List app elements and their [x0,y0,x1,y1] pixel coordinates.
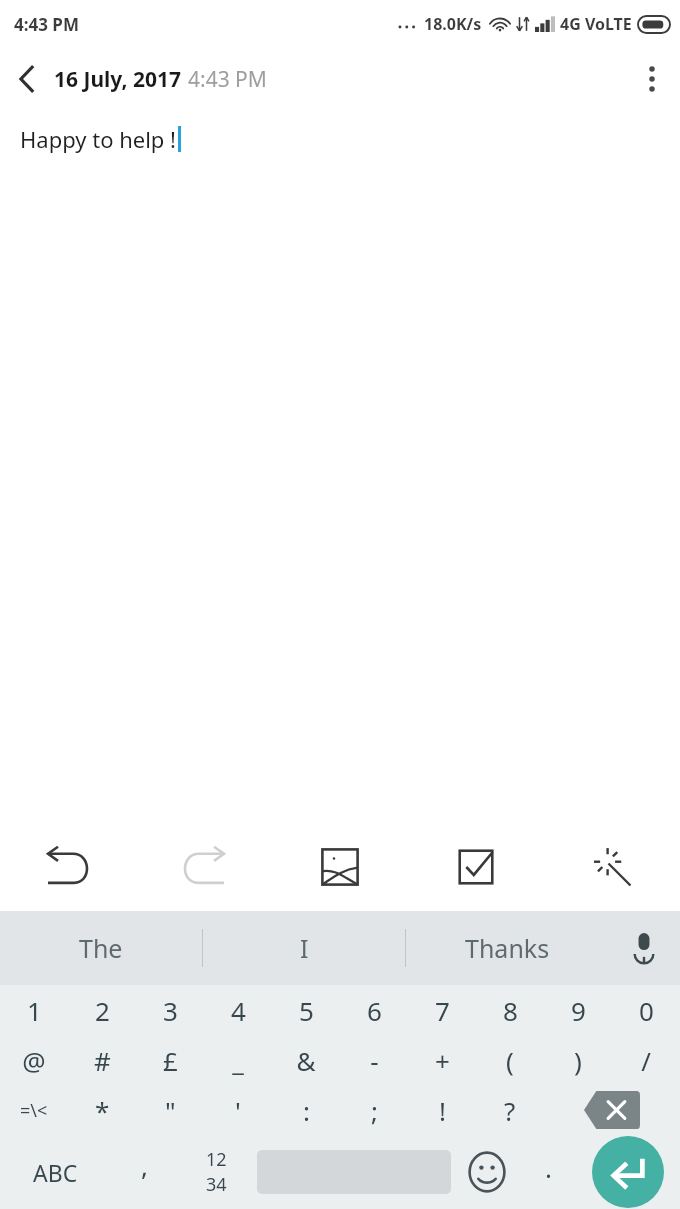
staticText: & [296,1043,316,1078]
button[interactable]: Redo [136,823,272,911]
button[interactable]: More options [624,51,680,107]
staticText: 7 [435,993,450,1028]
button[interactable]: £ [136,1035,204,1085]
button[interactable]: 4 [204,985,272,1035]
button[interactable]: # [68,1035,136,1085]
staticText: : [303,1093,310,1128]
staticText: " [165,1093,176,1128]
button[interactable]: & [272,1035,340,1085]
button[interactable]: Numbers [178,1135,254,1209]
staticText: 34 [206,1172,227,1197]
staticText: . [545,1150,552,1185]
staticText: 4 [231,993,246,1028]
button[interactable]: . [520,1135,576,1209]
button[interactable]: I [203,911,405,985]
staticText: 2 [95,993,110,1028]
button[interactable]: ! [408,1085,476,1135]
button[interactable]: 7 [408,985,476,1035]
staticText: / [641,1043,651,1078]
staticText: # [94,1043,111,1078]
button[interactable]: =\< [0,1085,68,1135]
staticText: 9 [571,993,586,1028]
staticText: 16 July, 2017 [54,65,181,94]
staticText: 6 [367,993,382,1028]
staticText: 8 [503,993,518,1028]
button[interactable]: ) [544,1035,612,1085]
staticText: ABC [33,1157,78,1188]
staticText: ' [235,1093,241,1128]
staticText: 1 [27,993,42,1028]
button[interactable]: 2 [68,985,136,1035]
button[interactable]: 6 [340,985,408,1035]
staticText: 5 [299,993,314,1028]
button[interactable]: ( [476,1035,544,1085]
button[interactable]: The [0,911,202,985]
staticText: Thanks [465,931,550,965]
staticText: =\< [20,1098,48,1123]
staticText: ? [504,1093,516,1128]
button[interactable]: Enter [576,1135,680,1209]
button[interactable]: _ [204,1035,272,1085]
button[interactable]: Undo [0,823,136,911]
staticText: ( [506,1043,514,1078]
button[interactable]: Voice input [608,911,680,985]
staticText: + [435,1043,450,1078]
staticText: ) [574,1043,582,1078]
button[interactable]: Back [0,52,54,106]
staticText: 3 [163,993,178,1028]
button[interactable]: - [340,1035,408,1085]
button[interactable]: + [408,1035,476,1085]
button[interactable]: " [136,1085,204,1135]
button[interactable]: ABC [0,1135,110,1209]
button[interactable]: Checklist [408,823,544,911]
button[interactable]: 0 [612,985,680,1035]
staticText: , [141,1148,148,1183]
staticText: 4:43 PM [14,13,79,36]
staticText: £ [163,1043,178,1078]
staticText: I [300,931,309,965]
staticText: @ [22,1043,46,1078]
staticText: 4:43 PM [188,65,267,94]
staticText: ; [371,1093,378,1128]
staticText: 18.0K/s [424,13,482,35]
button[interactable]: Space [254,1135,454,1209]
staticText: _ [232,1043,244,1078]
staticText: 4G VoLTE [560,13,632,35]
button[interactable]: 3 [136,985,204,1035]
button[interactable]: 9 [544,985,612,1035]
button[interactable]: @ [0,1035,68,1085]
button[interactable]: ? [476,1085,544,1135]
staticText: The [79,931,123,965]
button[interactable]: ; [340,1085,408,1135]
button[interactable]: / [612,1035,680,1085]
button[interactable]: Format [544,823,680,911]
button[interactable]: Thanks [406,911,608,985]
button[interactable]: 1 [0,985,68,1035]
staticText: * [95,1093,110,1128]
staticText: Happy to help ! [20,124,177,154]
staticText: 12 [206,1147,227,1172]
button[interactable]: 5 [272,985,340,1035]
staticText: ! [439,1093,446,1128]
button[interactable]: : [272,1085,340,1135]
button[interactable]: Insert image [272,823,408,911]
staticText: - [370,1043,379,1078]
staticText: 0 [639,993,654,1028]
button[interactable]: , [110,1135,178,1209]
button[interactable]: ' [204,1085,272,1135]
button[interactable]: 8 [476,985,544,1035]
button[interactable]: * [68,1085,136,1135]
button[interactable]: Backspace [544,1085,680,1135]
button[interactable]: Emoji [454,1135,520,1209]
